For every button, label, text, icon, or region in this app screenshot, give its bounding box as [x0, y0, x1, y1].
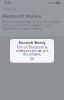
button[interactable]: Settings: [0, 6, 19, 11]
staticText: Turn on Bluetooth so nearby people can j…: [15, 46, 48, 56]
staticText: OK: [30, 58, 34, 61]
staticText: Settings: [5, 7, 16, 10]
button[interactable]: OK: [10, 57, 54, 62]
staticText: Bluetooth Sharing: [18, 41, 45, 45]
staticText: Bluetooth Sharing: [2, 13, 41, 18]
staticText: 9:41: [5, 1, 12, 5]
staticText: Allow nearby contacts to join this netwo…: [2, 20, 60, 31]
